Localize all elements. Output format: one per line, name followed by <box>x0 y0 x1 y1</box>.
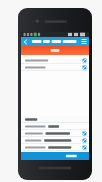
button[interactable]: Back <box>21 38 29 46</box>
button[interactable] <box>21 46 89 55</box>
button[interactable]: Select <box>82 58 87 63</box>
button[interactable]: Select <box>21 57 89 64</box>
button[interactable]: Select <box>21 130 89 137</box>
button[interactable]: Select <box>21 64 89 71</box>
button[interactable]: Select <box>82 145 87 150</box>
button[interactable] <box>21 152 89 160</box>
button[interactable]: Select <box>82 65 87 70</box>
button[interactable]: Select <box>21 137 89 144</box>
button[interactable]: Select <box>82 138 87 143</box>
button[interactable] <box>21 123 89 130</box>
button[interactable]: Select <box>82 131 87 136</box>
button[interactable]: Menu <box>80 37 89 46</box>
button[interactable]: Select <box>21 144 89 151</box>
